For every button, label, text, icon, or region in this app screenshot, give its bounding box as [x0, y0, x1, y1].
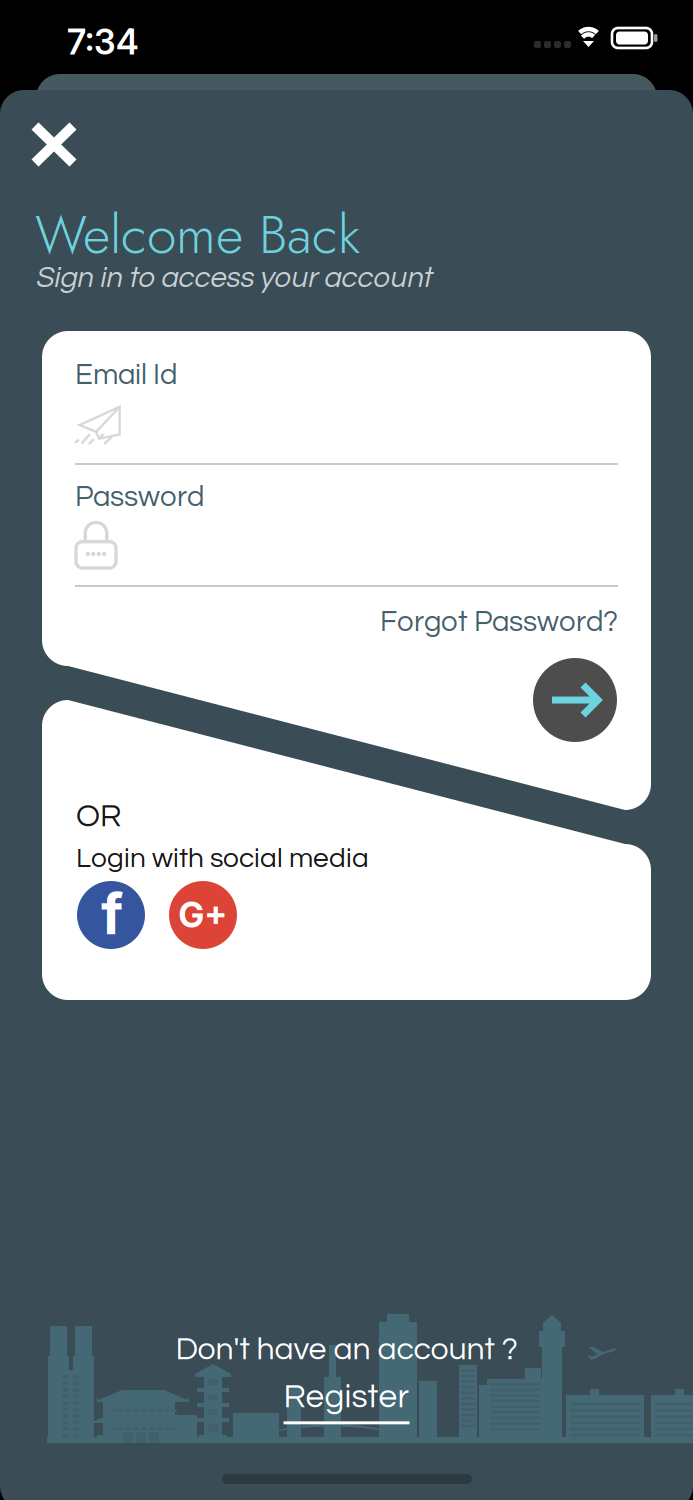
button[interactable]: Login with Google: [169, 881, 237, 949]
button[interactable]: Close: [17, 108, 91, 181]
staticText: Register: [283, 1380, 409, 1414]
button[interactable]: Register: [283, 1380, 409, 1424]
staticText: Forgot Password?: [380, 607, 618, 637]
button[interactable]: Forgot Password?: [380, 607, 618, 637]
staticText: Email Id: [75, 360, 177, 390]
button[interactable]: Login with Facebook: [77, 881, 145, 949]
staticText: 7:34: [67, 21, 139, 63]
staticText: Login with social media: [76, 844, 369, 873]
staticText: f: [101, 880, 123, 948]
staticText: OR: [76, 800, 121, 833]
staticText: G+: [178, 894, 227, 936]
staticText: Don't have an account ?: [175, 1333, 517, 1366]
staticText: Sign in to access your account: [35, 263, 432, 293]
staticText: Password: [75, 482, 204, 512]
button[interactable]: Sign in: [533, 658, 617, 742]
staticText: Welcome Back: [35, 196, 360, 273]
